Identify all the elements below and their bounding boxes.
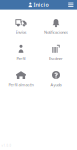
button[interactable]: Envíos — [3, 19, 38, 34]
button[interactable]: Perfil — [3, 45, 38, 60]
staticText: Notificaciones — [44, 29, 68, 35]
button[interactable]: Escáner — [38, 45, 73, 60]
button[interactable]: Menú — [66, 0, 76, 10]
staticText: Escáner — [49, 56, 63, 61]
staticText: Perfil almacén — [8, 82, 33, 87]
staticText: Inicio — [33, 1, 48, 8]
button[interactable]: Ayuda — [38, 71, 73, 87]
button[interactable]: Perfil almacén — [3, 71, 38, 87]
staticText: Perfil — [16, 56, 25, 61]
staticText: Ayuda — [50, 82, 61, 87]
button[interactable]: Notificaciones — [38, 19, 73, 34]
staticText: Envíos — [15, 29, 26, 35]
staticText: v 1.0.0 — [1, 144, 11, 147]
